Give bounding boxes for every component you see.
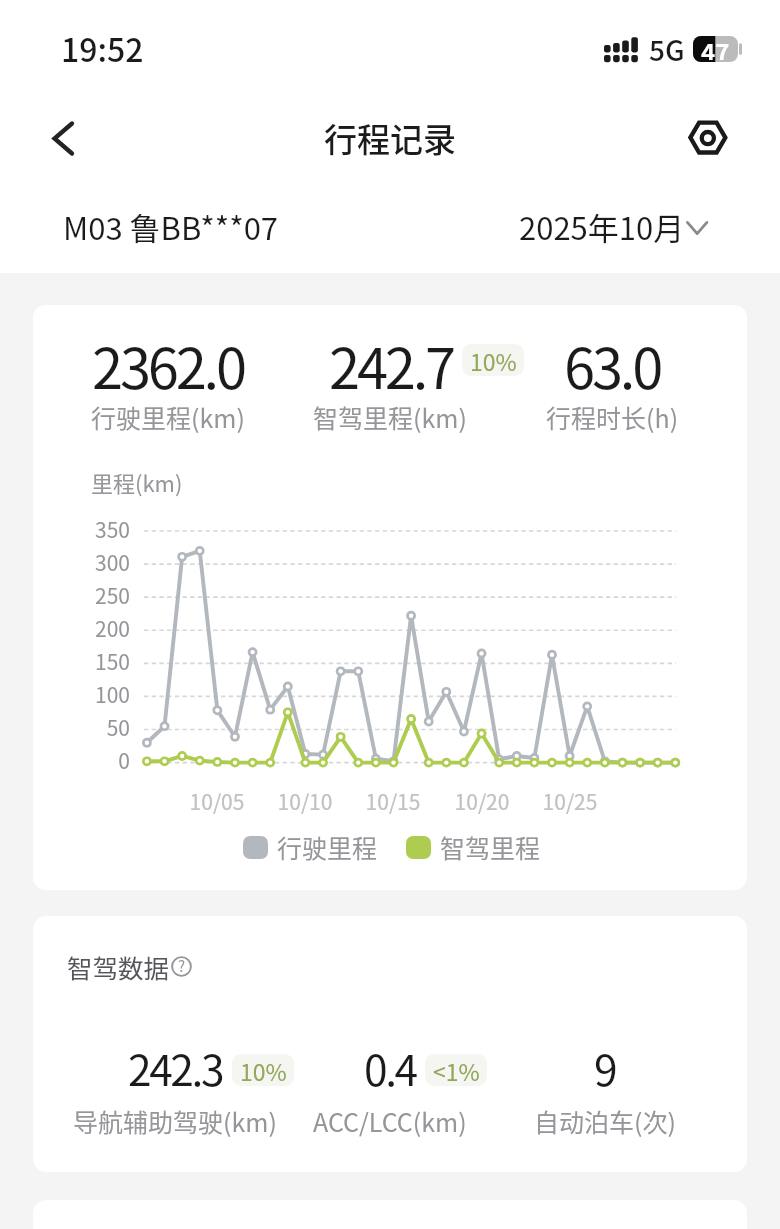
button[interactable]: Settings bbox=[675, 107, 739, 171]
staticText: 智驾里程(km) bbox=[313, 399, 467, 435]
staticText: 19:52 bbox=[61, 25, 144, 71]
staticText: 行程时长(h) bbox=[546, 399, 679, 435]
staticText: 10/05 bbox=[172, 786, 262, 816]
staticText: 自动泊车(次) bbox=[534, 1103, 676, 1139]
staticText: 智驾里程 bbox=[440, 829, 541, 865]
staticText: 2025年10月 bbox=[519, 204, 685, 249]
staticText: 行驶里程(km) bbox=[91, 399, 245, 435]
staticText: 242.3 bbox=[128, 1037, 223, 1099]
staticText: 10/20 bbox=[437, 786, 527, 816]
staticText: 行驶里程 bbox=[277, 829, 378, 865]
staticText: 350 bbox=[33, 514, 130, 544]
staticText: M03 鲁BB***07 bbox=[63, 204, 279, 249]
staticText: 150 bbox=[33, 646, 130, 676]
staticText: 0.4 bbox=[364, 1037, 416, 1099]
staticText: 10/25 bbox=[525, 786, 615, 816]
staticText: 行程记录 bbox=[324, 114, 456, 162]
staticText: 2362.0 bbox=[92, 324, 244, 405]
staticText: 0 bbox=[33, 745, 130, 775]
staticText: <1% bbox=[433, 1054, 480, 1086]
staticText: 47 bbox=[701, 34, 730, 60]
staticText: 250 bbox=[33, 580, 130, 610]
staticText: 10/10 bbox=[260, 786, 350, 816]
button[interactable]: 2025年10月 bbox=[519, 204, 711, 249]
staticText: 智驾数据 bbox=[67, 948, 170, 985]
staticText: 300 bbox=[33, 547, 130, 577]
staticText: 9 bbox=[594, 1037, 616, 1099]
button[interactable]: Back bbox=[32, 107, 96, 171]
button[interactable]: M03 鲁BB***07 bbox=[63, 204, 279, 249]
staticText: 100 bbox=[33, 679, 130, 709]
staticText: 63.0 bbox=[564, 324, 661, 405]
staticText: 10% bbox=[470, 344, 517, 376]
staticText: ACC/LCC(km) bbox=[313, 1103, 467, 1139]
staticText: 50 bbox=[33, 712, 130, 742]
staticText: 5G bbox=[649, 29, 685, 70]
staticText: 200 bbox=[33, 613, 130, 643]
staticText: ? bbox=[178, 955, 186, 976]
staticText: 10/15 bbox=[348, 786, 438, 816]
staticText: 里程(km) bbox=[91, 466, 183, 498]
staticText: 导航辅助驾驶(km) bbox=[73, 1103, 277, 1139]
staticText: 10% bbox=[240, 1054, 287, 1086]
staticText: 242.7 bbox=[329, 324, 453, 405]
